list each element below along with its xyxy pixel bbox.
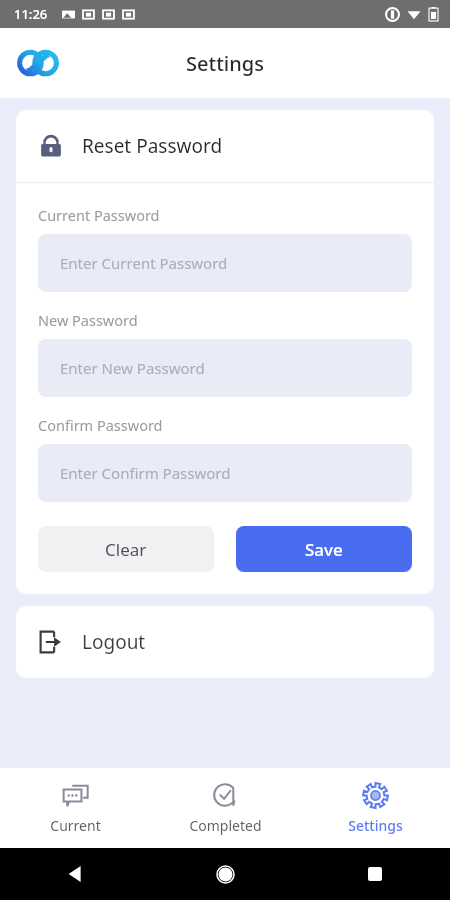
button[interactable]: Settings [300, 768, 450, 848]
staticText: Enter Confirm Password [60, 463, 231, 483]
button[interactable]: Logout [16, 606, 434, 678]
button[interactable]: Enter Current Password [38, 234, 412, 292]
staticText: Reset Password [82, 133, 223, 159]
staticText: Current Password [38, 205, 160, 225]
button[interactable]: Current [0, 768, 150, 848]
staticText: Confirm Password [38, 415, 163, 435]
staticText: Settings [186, 50, 264, 77]
staticText: Settings [348, 816, 403, 835]
staticText: 11:26 [14, 5, 48, 23]
staticText: Completed [189, 816, 262, 835]
button[interactable]: Enter Confirm Password [38, 444, 412, 502]
button[interactable]: Save [236, 526, 412, 572]
staticText: Save [305, 538, 343, 561]
staticText: Clear [105, 538, 147, 561]
staticText: Enter New Password [60, 358, 205, 378]
button[interactable]: Completed [150, 768, 300, 848]
button[interactable]: App logo [14, 39, 62, 87]
staticText: Enter Current Password [60, 253, 228, 273]
staticText: Current [50, 816, 101, 835]
button[interactable]: Enter New Password [38, 339, 412, 397]
button[interactable]: Clear [38, 526, 214, 572]
staticText: New Password [38, 310, 138, 330]
staticText: Logout [82, 629, 146, 655]
button[interactable]: Back [0, 848, 150, 900]
button[interactable]: Recents [300, 848, 450, 900]
button[interactable]: Home [150, 848, 300, 900]
